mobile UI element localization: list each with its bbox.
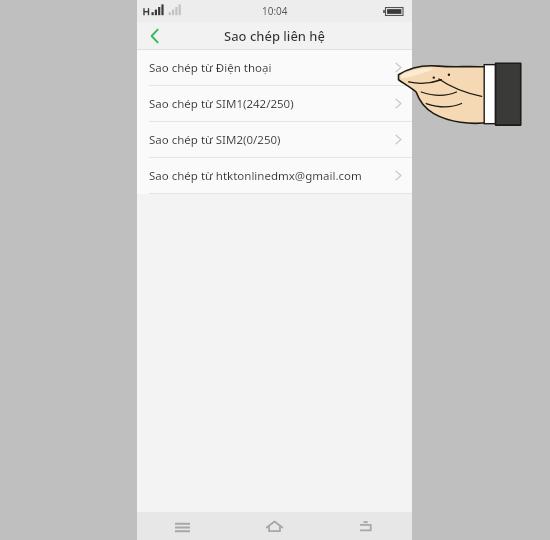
staticText: Sao chép từ htktonlinedmx@gmail.com [149, 168, 395, 184]
staticText: Sao chép liên hệ [224, 27, 325, 45]
button[interactable]: Menu [137, 512, 228, 540]
staticText: Sao chép từ Điện thoại [149, 60, 395, 76]
staticText: 10:04 [262, 4, 288, 18]
button[interactable]: Back [320, 512, 412, 540]
button[interactable]: Sao chép từ SIM1(242/250) [137, 86, 412, 121]
button[interactable]: Home [228, 512, 320, 540]
staticText: Sao chép từ SIM2(0/250) [149, 132, 395, 148]
button[interactable]: Sao chép từ SIM2(0/250) [137, 122, 412, 157]
button[interactable]: Sao chép từ htktonlinedmx@gmail.com [137, 158, 412, 193]
staticText: Sao chép từ SIM1(242/250) [149, 96, 395, 112]
button[interactable]: Sao chép từ Điện thoại [137, 50, 412, 85]
button[interactable]: Back [137, 22, 173, 50]
